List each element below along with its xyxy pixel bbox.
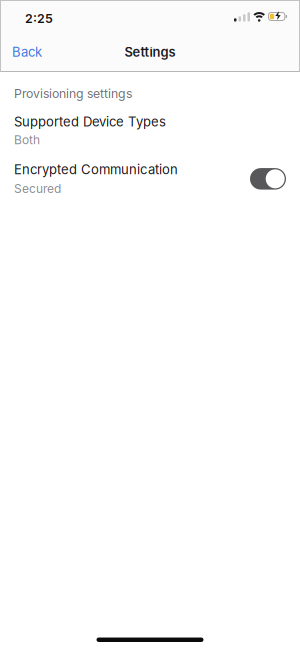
staticText: Settings bbox=[124, 44, 175, 60]
staticText: Secured bbox=[14, 181, 61, 196]
staticText: Encrypted Communication bbox=[14, 162, 178, 177]
staticText: Back bbox=[12, 44, 42, 60]
button[interactable]: Back bbox=[0, 44, 42, 60]
staticText: Provisioning settings bbox=[14, 86, 132, 101]
staticText: 2:25 bbox=[25, 11, 53, 26]
staticText: Both bbox=[14, 133, 40, 147]
staticText: Supported Device Types bbox=[14, 114, 166, 130]
button[interactable]: Encrypted Communication bbox=[14, 147, 286, 196]
button[interactable]: Supported Device Types bbox=[14, 101, 166, 147]
